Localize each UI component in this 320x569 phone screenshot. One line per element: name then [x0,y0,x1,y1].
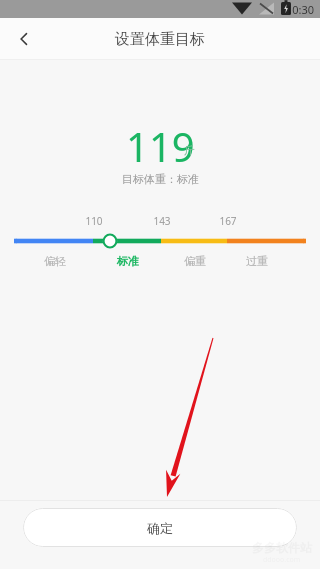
staticText: 标准 [117,254,139,268]
staticText: 斤 [184,143,195,157]
button[interactable]: Weight range slider [0,232,320,250]
staticText: 多多软件站 [252,540,312,555]
staticText: 偏轻 [44,254,66,268]
button[interactable]: 标准 [106,254,150,268]
staticText: 110 [85,214,103,228]
staticText: 目标体重：标准 [122,172,199,186]
staticText: 确定 [147,520,173,536]
button[interactable]: 偏轻 [33,254,77,268]
staticText: 10:30 [286,2,315,17]
staticText: 119 [126,119,195,163]
staticText: 设置体重目标 [115,30,205,49]
button[interactable]: 过重 [235,254,279,268]
staticText: 偏重 [184,254,206,268]
staticText: 过重 [246,254,268,268]
staticText: 167 [219,214,237,228]
button[interactable]: Back [8,23,40,55]
button[interactable]: 确定 [23,508,297,547]
button[interactable]: 偏重 [173,254,217,268]
staticText: 143 [153,214,171,228]
